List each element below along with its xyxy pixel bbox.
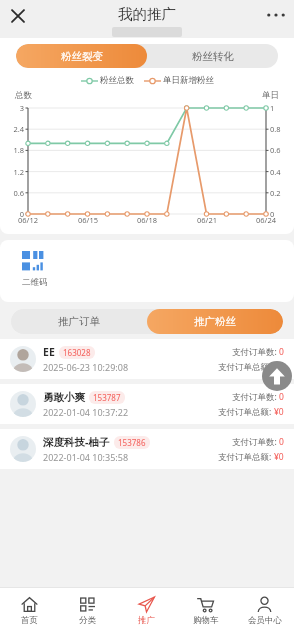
staticText: 1.8 xyxy=(9,145,24,155)
staticText: 支付订单总额: xyxy=(218,451,274,463)
staticText: 支付订单总额: xyxy=(218,406,274,418)
staticText: 粉丝裂变 xyxy=(61,50,103,63)
button[interactable]: Close xyxy=(5,3,31,29)
staticText: 1 xyxy=(270,103,275,113)
staticText: 2022-01-04 10:35:58 xyxy=(43,451,129,463)
staticText: 支付订单总额: xyxy=(218,361,274,373)
button[interactable]: 推广订单 xyxy=(11,309,147,334)
staticText: 06/15 xyxy=(76,215,100,225)
staticText: EE xyxy=(43,345,55,359)
button[interactable]: 推广粉丝 xyxy=(147,309,283,334)
button[interactable]: More options xyxy=(264,3,288,27)
staticText: 2022-01-04 10:37:22 xyxy=(43,406,129,418)
staticText: 粉丝转化 xyxy=(192,50,234,63)
staticText: 单日新增粉丝 xyxy=(163,75,214,86)
staticText: 推广 xyxy=(138,615,155,626)
staticText: 0.6 xyxy=(270,145,281,155)
staticText: 推广粉丝 xyxy=(194,315,236,328)
staticText: 0.6 xyxy=(9,188,24,198)
button[interactable]: 粉丝裂变 xyxy=(16,44,147,68)
staticText: 163028 xyxy=(63,347,91,358)
staticText: 153787 xyxy=(93,392,121,403)
staticText: ¥0 xyxy=(274,406,284,418)
staticText: 首页 xyxy=(21,615,38,626)
button[interactable]: EE xyxy=(10,339,284,379)
staticText: 0 xyxy=(279,436,284,448)
staticText: 06/24 xyxy=(254,215,278,225)
staticText: 153786 xyxy=(118,437,146,448)
button[interactable]: 首页 xyxy=(0,588,58,633)
staticText: 0 xyxy=(279,391,284,403)
button[interactable]: QR code xyxy=(22,251,44,273)
staticText: 0.2 xyxy=(270,188,281,198)
button[interactable]: 会员中心 xyxy=(235,588,294,633)
staticText: 支付订单数: xyxy=(232,346,279,358)
staticText: 0 xyxy=(9,209,24,219)
staticText: 0.8 xyxy=(270,124,281,134)
staticText: 2025-06-23 10:29:08 xyxy=(43,361,129,373)
staticText: 推广订单 xyxy=(58,315,100,328)
staticText: 二维码 xyxy=(22,277,48,288)
staticText: 0 xyxy=(270,209,275,219)
staticText: 深度科技-柚子 xyxy=(43,435,110,449)
staticText: 06/21 xyxy=(195,215,219,225)
staticText: 粉丝总数 xyxy=(100,75,134,86)
staticText: 会员中心 xyxy=(248,615,282,626)
staticText: 06/18 xyxy=(135,215,159,225)
staticText: 1.2 xyxy=(9,167,24,177)
button[interactable]: 粉丝转化 xyxy=(147,44,278,68)
staticText: 2.4 xyxy=(9,124,24,134)
staticText: 支付订单数: xyxy=(232,436,279,448)
staticText: ¥0 xyxy=(274,361,284,373)
button[interactable]: Scroll to top xyxy=(262,361,292,391)
staticText: 支付订单数: xyxy=(232,391,279,403)
button[interactable]: 分类 xyxy=(58,588,117,633)
staticText: 06/12 xyxy=(16,215,40,225)
button[interactable]: 购物车 xyxy=(176,588,235,633)
button[interactable]: 推广 xyxy=(117,588,176,633)
staticText: 单日 xyxy=(262,90,279,101)
button[interactable]: 深度科技-柚子 xyxy=(10,429,284,469)
staticText: 0 xyxy=(279,346,284,358)
staticText: 总数 xyxy=(15,90,32,101)
staticText: ¥0 xyxy=(274,451,284,463)
staticText: 0.4 xyxy=(270,167,281,177)
staticText: 3 xyxy=(9,103,24,113)
staticText: 分类 xyxy=(79,615,96,626)
button[interactable]: 勇敢小爽 xyxy=(10,384,284,424)
staticText: 我的推广 xyxy=(118,5,176,23)
staticText: 勇敢小爽 xyxy=(43,391,85,404)
staticText: 购物车 xyxy=(193,615,219,626)
